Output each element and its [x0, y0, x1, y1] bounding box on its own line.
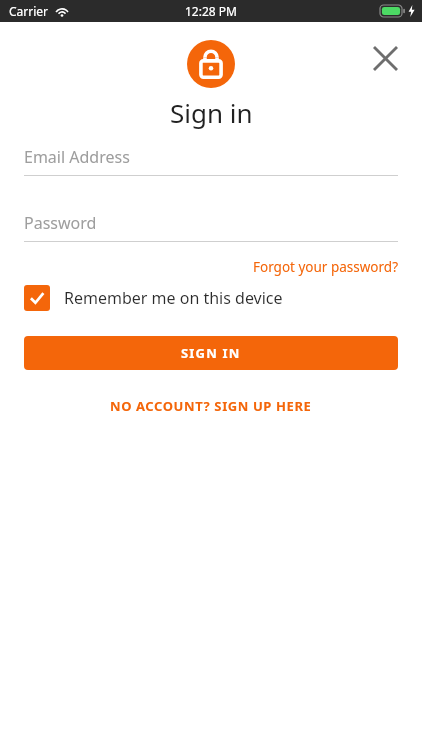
button[interactable]: Close	[363, 36, 407, 80]
staticText: Email Address	[24, 146, 130, 168]
button[interactable]: Forgot your password?	[228, 255, 398, 279]
staticText: Sign in	[170, 95, 253, 130]
button[interactable]: SIGN IN	[24, 336, 398, 370]
staticText: Carrier	[9, 3, 49, 19]
staticText: Forgot your password?	[252, 258, 398, 276]
button[interactable]: Remember me on this device	[24, 283, 283, 313]
staticText: NO ACCOUNT? SIGN UP HERE	[110, 397, 312, 415]
staticText: Password	[24, 212, 97, 234]
button[interactable]: NO ACCOUNT? SIGN UP HERE	[0, 392, 422, 420]
button[interactable]: Password	[24, 204, 398, 242]
staticText: Remember me on this device	[64, 287, 283, 309]
staticText: 12:28 PM	[185, 3, 237, 19]
staticText: SIGN IN	[181, 344, 241, 362]
button[interactable]: Email Address	[24, 138, 398, 176]
